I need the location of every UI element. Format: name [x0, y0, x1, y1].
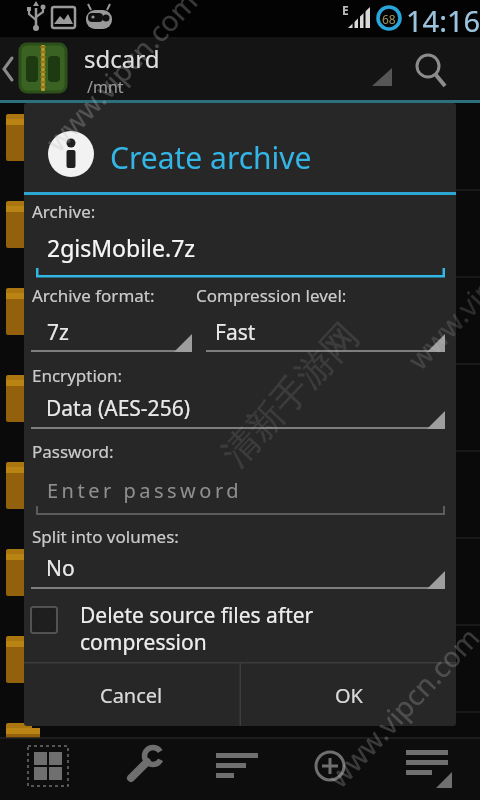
- staticText: Archive:: [32, 200, 96, 223]
- button[interactable]: [96, 740, 192, 800]
- button[interactable]: [31, 599, 445, 659]
- staticText: Data (AES-256): [46, 394, 190, 423]
- staticText: www.vipcn.com: [319, 619, 480, 795]
- staticText: 68: [382, 11, 396, 27]
- button[interactable]: [31, 471, 445, 516]
- button[interactable]: [0, 37, 80, 100]
- staticText: 2gisMobile.7z: [47, 232, 196, 263]
- staticText: /mnt: [87, 76, 124, 98]
- staticText: www.vipcn.com: [37, 0, 205, 159]
- button[interactable]: [288, 740, 384, 800]
- button[interactable]: [31, 223, 445, 278]
- button[interactable]: [360, 40, 408, 100]
- staticText: Archive format:: [32, 284, 155, 307]
- staticText: No: [46, 554, 75, 583]
- staticText: Compression level:: [196, 284, 347, 307]
- staticText: 清新手游网: [212, 313, 368, 476]
- staticText: Enter password: [47, 477, 243, 504]
- staticText: Create archive: [110, 137, 312, 178]
- button[interactable]: [0, 740, 96, 800]
- button[interactable]: [31, 313, 192, 353]
- button[interactable]: [408, 40, 456, 100]
- staticText: compression: [80, 628, 207, 657]
- staticText: 14:16: [406, 1, 480, 40]
- button[interactable]: OK: [241, 664, 456, 726]
- button[interactable]: [192, 740, 288, 800]
- staticText: 7z: [47, 318, 69, 347]
- staticText: Delete source files after: [80, 601, 314, 630]
- button[interactable]: [206, 313, 445, 353]
- staticText: E: [342, 2, 349, 18]
- staticText: Cancel: [100, 682, 163, 709]
- staticText: Encryption:: [32, 364, 123, 387]
- button[interactable]: [31, 389, 445, 429]
- button[interactable]: Cancel: [24, 664, 239, 726]
- staticText: OK: [335, 682, 363, 709]
- button[interactable]: [384, 740, 480, 800]
- staticText: Fast: [215, 318, 256, 347]
- staticText: sdcard: [84, 42, 160, 75]
- staticText: Split into volumes:: [32, 525, 179, 548]
- staticText: Password:: [32, 440, 114, 463]
- staticText: www.vipcn.com: [399, 201, 480, 377]
- button[interactable]: [31, 549, 445, 589]
